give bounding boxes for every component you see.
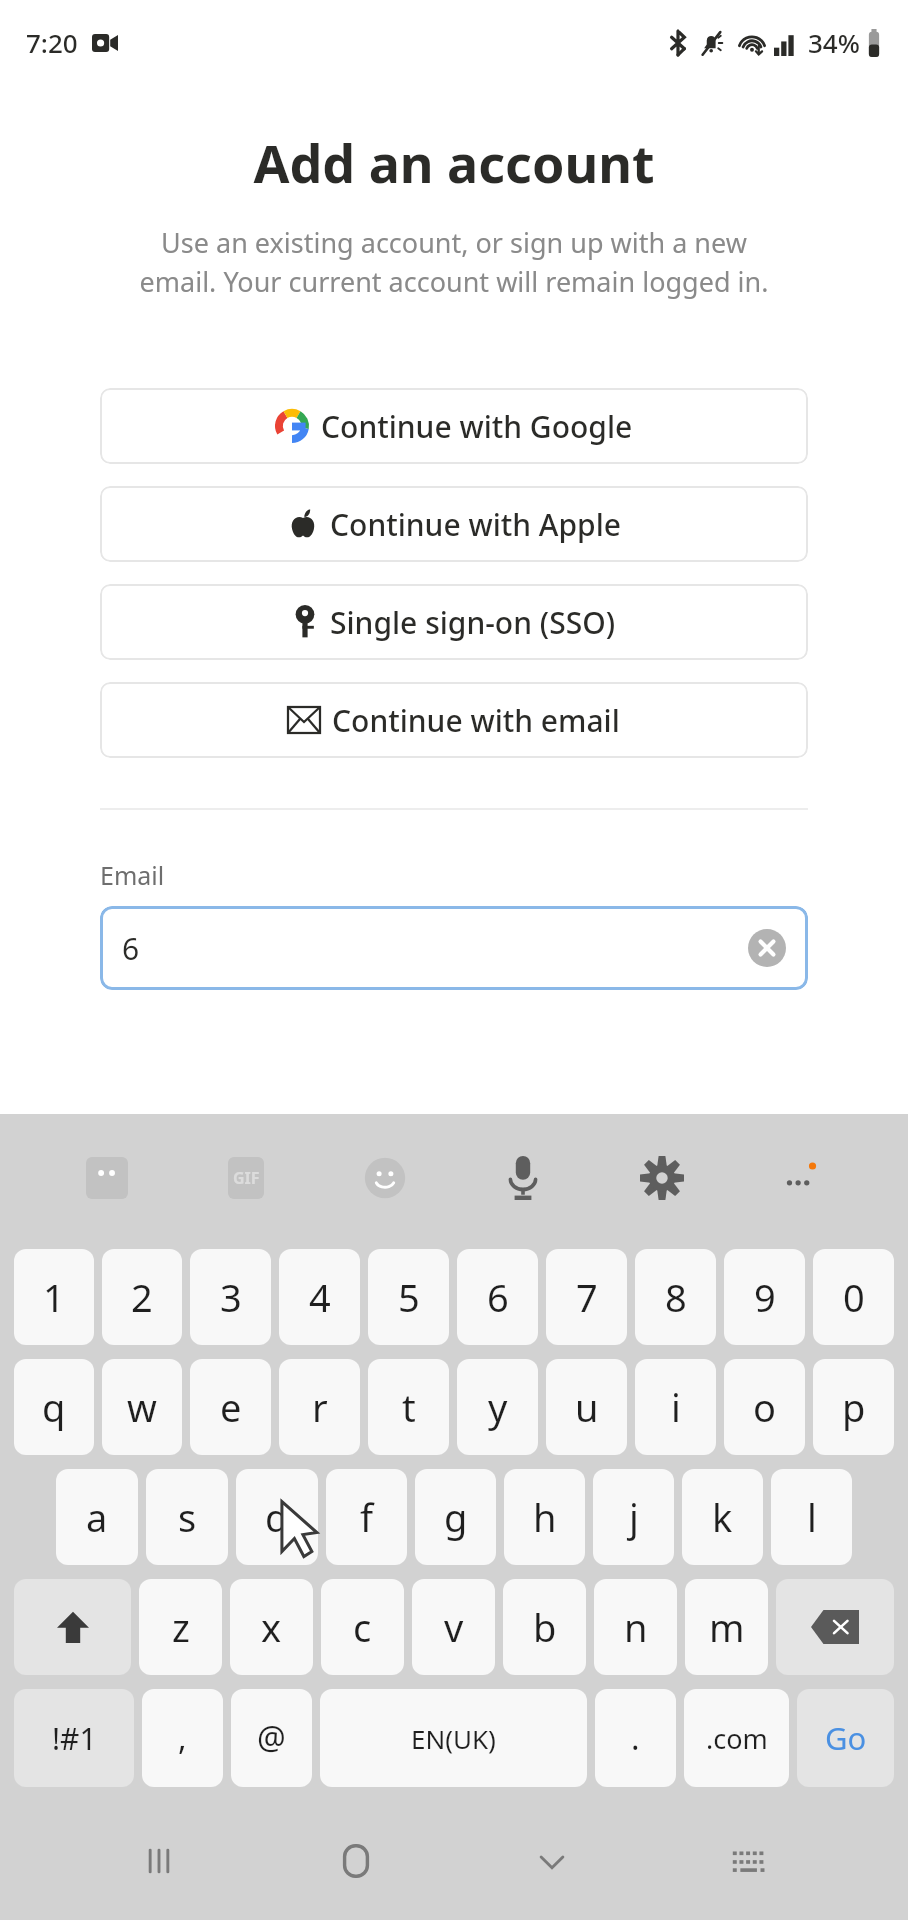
button[interactable]: m: [685, 1579, 768, 1675]
staticText: z: [172, 1601, 190, 1653]
button[interactable]: Stickers: [75, 1146, 139, 1210]
staticText: g: [444, 1491, 468, 1543]
staticText: r: [312, 1381, 328, 1433]
button[interactable]: 1: [14, 1249, 94, 1345]
staticText: Add an account: [0, 127, 908, 198]
staticText: Continue with Apple: [330, 504, 621, 545]
staticText: b: [533, 1601, 557, 1653]
button[interactable]: e: [190, 1359, 271, 1455]
staticText: d: [265, 1491, 289, 1543]
staticText: h: [533, 1491, 557, 1543]
staticText: GIF: [233, 1167, 260, 1189]
staticText: Single sign-on (SSO): [330, 602, 616, 643]
button[interactable]: t: [368, 1359, 449, 1455]
staticText: Email: [100, 858, 165, 892]
staticText: t: [402, 1381, 416, 1433]
button[interactable]: 7: [546, 1249, 627, 1345]
button[interactable]: Recent apps: [121, 1823, 197, 1899]
button[interactable]: 2: [102, 1249, 182, 1345]
button[interactable]: p: [813, 1359, 894, 1455]
staticText: 34%: [808, 25, 860, 60]
button[interactable]: GIF: [214, 1146, 278, 1210]
staticText: 5: [398, 1271, 420, 1323]
button[interactable]: 8: [635, 1249, 716, 1345]
staticText: i: [671, 1381, 681, 1433]
staticText: a: [86, 1491, 108, 1543]
staticText: w: [127, 1381, 157, 1433]
button[interactable]: i: [635, 1359, 716, 1455]
button[interactable]: Continue with Google: [100, 388, 808, 464]
staticText: n: [624, 1601, 648, 1653]
button[interactable]: y: [457, 1359, 538, 1455]
button[interactable]: u: [546, 1359, 627, 1455]
button[interactable]: ,: [142, 1689, 223, 1787]
button[interactable]: g: [415, 1469, 496, 1565]
button[interactable]: v: [412, 1579, 495, 1675]
staticText: 7: [576, 1271, 598, 1323]
staticText: s: [178, 1491, 197, 1543]
button[interactable]: @: [231, 1689, 312, 1787]
button[interactable]: Hide keyboard: [514, 1823, 590, 1899]
staticText: !#1: [52, 1718, 97, 1759]
button[interactable]: q: [14, 1359, 94, 1455]
staticText: .: [631, 1716, 640, 1760]
staticText: Use an existing account, or sign up with…: [22, 224, 886, 300]
button[interactable]: 5: [368, 1249, 449, 1345]
staticText: 1: [43, 1271, 65, 1323]
button[interactable]: Emoji: [353, 1146, 417, 1210]
button[interactable]: Single sign-on (SSO): [100, 584, 808, 660]
button[interactable]: f: [326, 1469, 407, 1565]
staticText: Continue with Google: [321, 406, 633, 447]
staticText: Continue with email: [332, 700, 620, 741]
button[interactable]: Shift: [14, 1579, 131, 1675]
staticText: 4: [309, 1271, 331, 1323]
staticText: @: [257, 1716, 286, 1760]
button[interactable]: 0: [813, 1249, 894, 1345]
button[interactable]: 6: [457, 1249, 538, 1345]
button[interactable]: l: [771, 1469, 852, 1565]
button[interactable]: 6: [100, 906, 808, 990]
button[interactable]: .: [595, 1689, 676, 1787]
button[interactable]: Keyboard settings: [630, 1146, 694, 1210]
button[interactable]: z: [139, 1579, 222, 1675]
button[interactable]: 3: [190, 1249, 271, 1345]
staticText: l: [807, 1491, 817, 1543]
staticText: v: [444, 1601, 464, 1653]
staticText: 6: [122, 928, 140, 969]
button[interactable]: Clear text: [748, 929, 786, 967]
button[interactable]: k: [682, 1469, 763, 1565]
button[interactable]: a: [56, 1469, 138, 1565]
staticText: 9: [754, 1271, 776, 1323]
button[interactable]: x: [230, 1579, 313, 1675]
button[interactable]: EN(UK): [320, 1689, 587, 1787]
staticText: u: [575, 1381, 599, 1433]
button[interactable]: o: [724, 1359, 805, 1455]
button[interactable]: 9: [724, 1249, 805, 1345]
button[interactable]: b: [503, 1579, 586, 1675]
button[interactable]: Switch keyboard: [711, 1823, 787, 1899]
button[interactable]: !#1: [14, 1689, 134, 1787]
button[interactable]: Backspace: [776, 1579, 894, 1675]
staticText: EN(UK): [411, 1721, 496, 1756]
staticText: 3: [220, 1271, 242, 1323]
button[interactable]: s: [146, 1469, 228, 1565]
button[interactable]: Voice input: [491, 1146, 555, 1210]
button[interactable]: c: [321, 1579, 404, 1675]
button[interactable]: Home: [318, 1823, 394, 1899]
button[interactable]: n: [594, 1579, 677, 1675]
button[interactable]: d: [236, 1469, 318, 1565]
button[interactable]: h: [504, 1469, 585, 1565]
button[interactable]: w: [102, 1359, 182, 1455]
button[interactable]: r: [279, 1359, 360, 1455]
button[interactable]: .com: [684, 1689, 789, 1787]
button[interactable]: Go: [797, 1689, 894, 1787]
button[interactable]: Continue with Apple: [100, 486, 808, 562]
staticText: ,: [178, 1716, 187, 1760]
button[interactable]: j: [593, 1469, 674, 1565]
staticText: o: [753, 1381, 776, 1433]
staticText: j: [629, 1491, 639, 1543]
button[interactable]: More options: [769, 1146, 833, 1210]
button[interactable]: Continue with email: [100, 682, 808, 758]
button[interactable]: 4: [279, 1249, 360, 1345]
staticText: 2: [131, 1271, 153, 1323]
